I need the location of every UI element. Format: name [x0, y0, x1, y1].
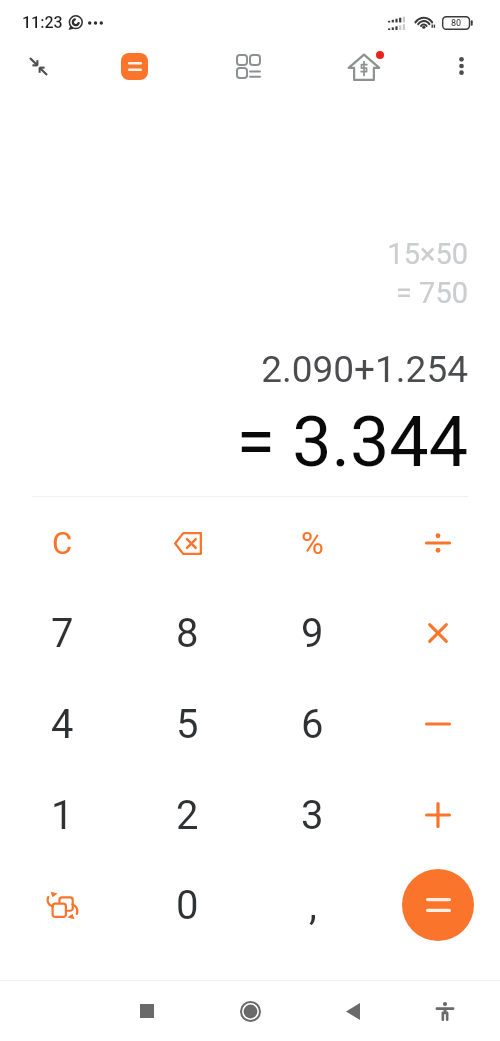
staticText: 2.090+1.254	[0, 348, 468, 391]
button[interactable]: Collapse	[0, 40, 77, 92]
staticText: 9	[301, 610, 324, 657]
staticText: 1	[51, 792, 74, 839]
staticText: 5	[176, 701, 199, 748]
staticText: 6	[301, 701, 324, 748]
button[interactable]: 0	[125, 860, 250, 950]
button[interactable]: Percent	[250, 498, 375, 588]
staticText: %	[301, 525, 324, 561]
button[interactable]: Divide	[375, 498, 500, 588]
button[interactable]: 5	[125, 679, 250, 769]
button[interactable]: 1	[0, 770, 125, 860]
button[interactable]: Unit converter	[0, 860, 125, 950]
button[interactable]: Minus	[375, 679, 500, 769]
button[interactable]: Recents	[108, 981, 186, 1041]
staticText: 15×50	[0, 237, 468, 271]
button[interactable]: More options	[422, 40, 500, 92]
button[interactable]: 9	[250, 588, 375, 678]
staticText: C	[52, 525, 73, 561]
button[interactable]: Calculator	[77, 40, 191, 92]
button[interactable]: Mortgage	[308, 40, 424, 92]
staticText: 0	[176, 882, 199, 929]
button[interactable]: Converters	[191, 40, 306, 92]
staticText: 3	[301, 792, 324, 839]
button[interactable]: Multiply	[375, 588, 500, 678]
staticText: = 750	[0, 276, 468, 310]
button[interactable]: 8	[125, 588, 250, 678]
button[interactable]: Clear	[0, 498, 125, 588]
staticText: 11:23	[22, 13, 63, 32]
button[interactable]: 2	[125, 770, 250, 860]
button[interactable]: 6	[250, 679, 375, 769]
staticText: ,	[309, 882, 317, 929]
staticText: 2	[176, 792, 199, 839]
staticText: 8	[176, 610, 199, 657]
button[interactable]: Accessibility	[406, 981, 484, 1041]
staticText: 7	[51, 610, 74, 657]
button[interactable]: Back	[314, 981, 392, 1041]
button[interactable]: 7	[0, 588, 125, 678]
button[interactable]: Equals	[375, 860, 500, 950]
button[interactable]: 4	[0, 679, 125, 769]
staticText: = 3.344	[0, 401, 468, 483]
button[interactable]: Backspace	[125, 498, 250, 588]
staticText: 80	[451, 18, 462, 29]
button[interactable]: Plus	[375, 770, 500, 860]
button[interactable]: Decimal point	[250, 860, 375, 950]
button[interactable]: Home	[211, 981, 289, 1041]
staticText: 4	[51, 701, 74, 748]
button[interactable]: 3	[250, 770, 375, 860]
